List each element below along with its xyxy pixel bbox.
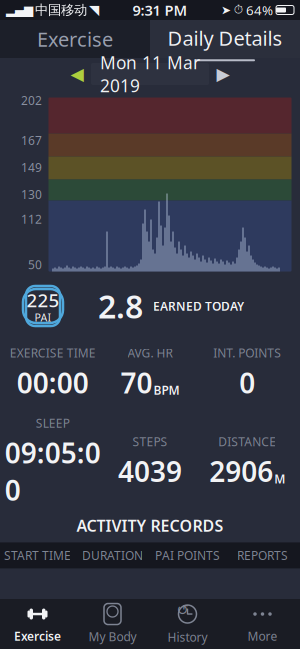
staticText: 2.8 — [98, 285, 143, 327]
staticText: PAI POINTS — [155, 547, 220, 563]
staticText: Exercise — [14, 628, 61, 644]
staticText: AVG. HR — [127, 345, 172, 361]
button[interactable]: More — [225, 600, 300, 648]
staticText: Exercise — [37, 26, 113, 52]
staticText: ⏱ — [234, 4, 243, 16]
staticText: ➤ — [221, 3, 231, 17]
staticText: My Body — [88, 628, 136, 644]
staticText: ◀ — [70, 64, 83, 84]
button[interactable]: Exercise — [0, 600, 75, 648]
button[interactable]: Exercise — [0, 20, 150, 58]
staticText: 112 — [21, 211, 42, 227]
staticText: BPM — [153, 382, 179, 398]
staticText: 225 — [26, 287, 59, 312]
staticText: DISTANCE — [218, 434, 276, 450]
staticText: 130 — [21, 186, 42, 202]
staticText: 4039 — [118, 453, 182, 490]
staticText: Daily Details — [167, 25, 282, 51]
staticText: History — [167, 629, 207, 645]
staticText: M — [274, 471, 285, 487]
staticText: 2906 — [209, 453, 273, 490]
staticText: START TIME — [4, 547, 71, 563]
staticText: INT. POINTS — [213, 345, 281, 361]
staticText: REPORTS — [237, 547, 288, 563]
staticText: ACTIVITY RECORDS — [76, 515, 223, 536]
staticText: 64% — [246, 1, 273, 19]
staticText: ◥ — [89, 2, 99, 17]
staticText: 00:00 — [17, 364, 89, 401]
staticText: 09:05:00 — [5, 434, 101, 508]
staticText: 50 — [28, 257, 42, 272]
staticText: 0 — [239, 364, 255, 401]
staticText: EXERCISE TIME — [10, 345, 96, 361]
staticText: EARNED TODAY — [153, 298, 244, 314]
staticText: STEPS — [132, 434, 167, 450]
staticText: PAI — [34, 310, 51, 324]
staticText: SLEEP — [36, 415, 70, 431]
staticText: 70 — [120, 364, 152, 401]
staticText: 149 — [21, 159, 42, 175]
staticText: 167 — [21, 132, 42, 148]
staticText: ↺ — [176, 602, 188, 618]
staticText: ▶ — [216, 64, 229, 84]
button[interactable]: Next day — [209, 63, 237, 85]
staticText: More — [247, 628, 277, 644]
button[interactable]: My Body — [75, 600, 150, 648]
staticText: 202 — [21, 92, 42, 108]
staticText: 中国移动 — [35, 2, 87, 18]
button[interactable]: Daily Details — [150, 20, 300, 58]
staticText: ▂▄▆ — [6, 3, 33, 17]
button[interactable]: Previous day — [63, 63, 91, 85]
button[interactable]: ↺ — [150, 600, 225, 648]
staticText: Mon 11 Mar 2019 — [100, 51, 200, 97]
staticText: DURATION — [82, 547, 143, 563]
staticText: 9:31 PM — [132, 0, 187, 20]
